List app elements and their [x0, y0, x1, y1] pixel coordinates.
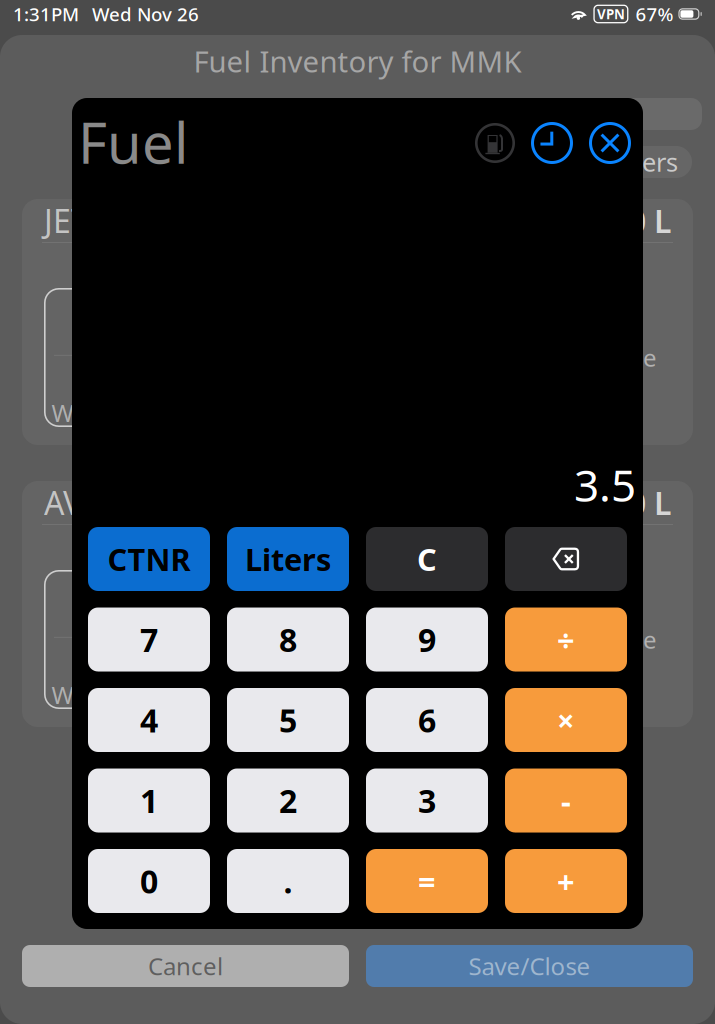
staticText: Save/Close [468, 950, 590, 982]
button[interactable]: C [366, 527, 488, 591]
button[interactable]: 5 [227, 688, 349, 752]
staticText: 3.5 [574, 456, 636, 514]
button[interactable]: 7 [88, 607, 210, 671]
button[interactable]: 3 [366, 768, 488, 832]
button[interactable]: = [366, 849, 488, 913]
staticText: Wed Nov 26 [92, 2, 199, 26]
staticText: VPN [597, 5, 625, 23]
button[interactable]: - [505, 768, 627, 832]
button[interactable]: × [505, 688, 627, 752]
staticText: CTNR [107, 539, 190, 579]
staticText: - [561, 780, 571, 821]
button[interactable]: Save/Close [366, 945, 693, 987]
staticText: + [557, 861, 575, 901]
staticText: Volume [571, 342, 657, 373]
staticText: Volume [571, 624, 657, 655]
staticText: 5 [279, 699, 297, 741]
staticText: × [557, 700, 575, 740]
staticText: JET A1 [44, 199, 135, 242]
staticText: 7 [140, 618, 158, 661]
staticText: 8 [279, 618, 297, 661]
staticText: 1:31PM [13, 2, 79, 26]
staticText: 3 [418, 779, 436, 822]
staticText: Fuel Inventory for MMK [193, 41, 521, 80]
staticText: Liters [613, 145, 678, 179]
button[interactable]: Liters [227, 527, 349, 591]
button[interactable]: Backspace [505, 527, 627, 591]
staticText: 4 [140, 699, 158, 741]
staticText: AVGAS [44, 481, 143, 524]
button[interactable]: 0 [88, 849, 210, 913]
staticText: 0 [83, 584, 101, 627]
staticText: Cancel [148, 950, 223, 982]
staticText: Weight [51, 679, 132, 711]
staticText: 6 [418, 699, 436, 741]
staticText: C [417, 539, 437, 579]
staticText: = [418, 861, 436, 901]
button[interactable]: ÷ [505, 607, 627, 671]
staticText: 0 L [628, 199, 671, 242]
staticText: 0 [140, 860, 158, 902]
staticText: ÷ [557, 619, 575, 660]
staticText: Fuel [78, 105, 188, 179]
button[interactable]: 2 [227, 768, 349, 832]
button[interactable]: Fuel type [475, 123, 515, 163]
button[interactable]: + [505, 849, 627, 913]
staticText: . [283, 860, 292, 902]
button[interactable]: Cancel [22, 945, 349, 987]
staticText: 2 [279, 779, 297, 822]
button[interactable]: 8 [227, 607, 349, 671]
button[interactable]: Close [589, 122, 631, 164]
button[interactable]: 1 [88, 768, 210, 832]
staticText: 67% [635, 2, 673, 26]
staticText: Liters [245, 539, 331, 579]
button[interactable]: History [531, 122, 573, 164]
button[interactable]: . [227, 849, 349, 913]
button[interactable]: 9 [366, 607, 488, 671]
staticText: 1 [140, 779, 158, 822]
staticText: 0 L [628, 481, 671, 524]
button[interactable]: CTNR [88, 527, 210, 591]
button[interactable]: 6 [366, 688, 488, 752]
button[interactable]: 4 [88, 688, 210, 752]
staticText: 9 [418, 618, 436, 661]
staticText: Weight [51, 397, 132, 429]
